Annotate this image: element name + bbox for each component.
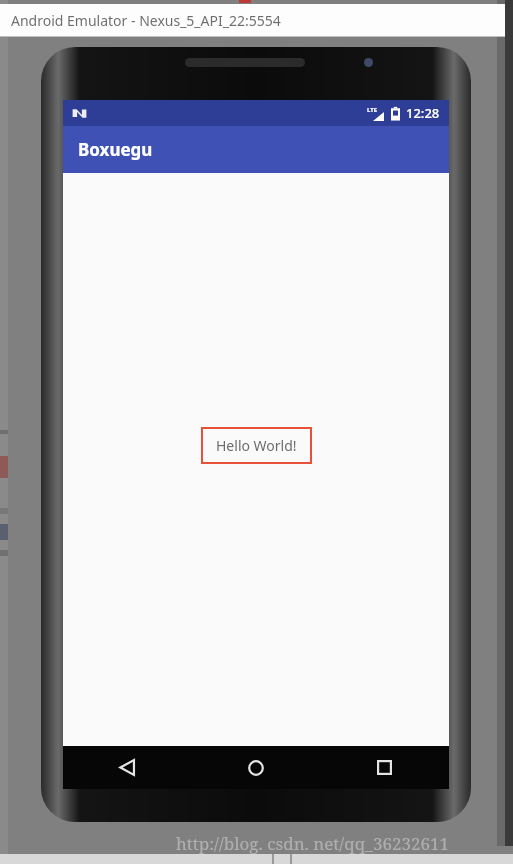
button[interactable]: Home — [191, 746, 320, 789]
staticText: LTE — [367, 106, 378, 114]
staticText: Android Emulator - Nexus_5_API_22:5554 — [11, 11, 281, 30]
button[interactable]: Hello World! — [201, 427, 312, 464]
staticText: 12:28 — [406, 104, 440, 122]
button[interactable]: Recent apps — [320, 746, 449, 789]
staticText: http://blog. csdn. net/qq_36232611 — [176, 832, 449, 855]
button[interactable]: Back — [63, 746, 191, 789]
staticText: Hello World! — [216, 436, 297, 455]
staticText: Boxuegu — [78, 138, 153, 161]
